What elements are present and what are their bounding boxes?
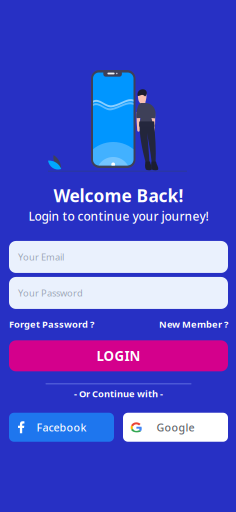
staticText: Forget Password ? [9, 318, 94, 330]
staticText: Login to continue your journey! [28, 208, 208, 224]
staticText: LOGIN [96, 347, 140, 365]
button[interactable]: LOGIN [9, 340, 228, 371]
button[interactable]: New Member ? [159, 318, 228, 330]
staticText: New Member ? [159, 318, 228, 330]
button[interactable]: Facebook [9, 413, 114, 442]
staticText: Welcome Back! [53, 184, 183, 207]
staticText: Your Password [18, 287, 83, 299]
button[interactable]: Google [123, 413, 228, 442]
button[interactable]: Forget Password ? [9, 318, 94, 330]
staticText: Your Email [18, 251, 64, 263]
staticText: Google [156, 420, 194, 434]
staticText: Facebook [36, 420, 86, 434]
staticText: - Or Continue with - [74, 387, 163, 400]
